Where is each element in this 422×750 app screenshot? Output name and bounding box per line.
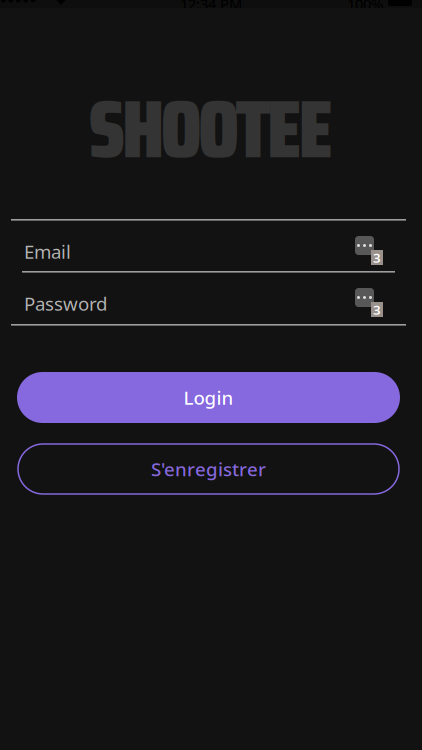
staticText: Login xyxy=(183,385,233,410)
staticText: S'enregistrer xyxy=(151,457,266,481)
button[interactable]: S'enregistrer xyxy=(18,444,399,494)
staticText: 3 xyxy=(373,301,381,318)
staticText: 100% xyxy=(347,0,383,13)
staticText: Password xyxy=(24,291,107,316)
button[interactable]: Login xyxy=(17,372,400,423)
button[interactable]: Email xyxy=(0,221,422,273)
staticText: 12:34 PM xyxy=(180,0,242,13)
staticText: Email xyxy=(24,239,71,264)
button[interactable]: Password xyxy=(0,273,422,324)
staticText: 3 xyxy=(373,249,381,266)
staticText: SHOOTEE xyxy=(88,65,333,193)
